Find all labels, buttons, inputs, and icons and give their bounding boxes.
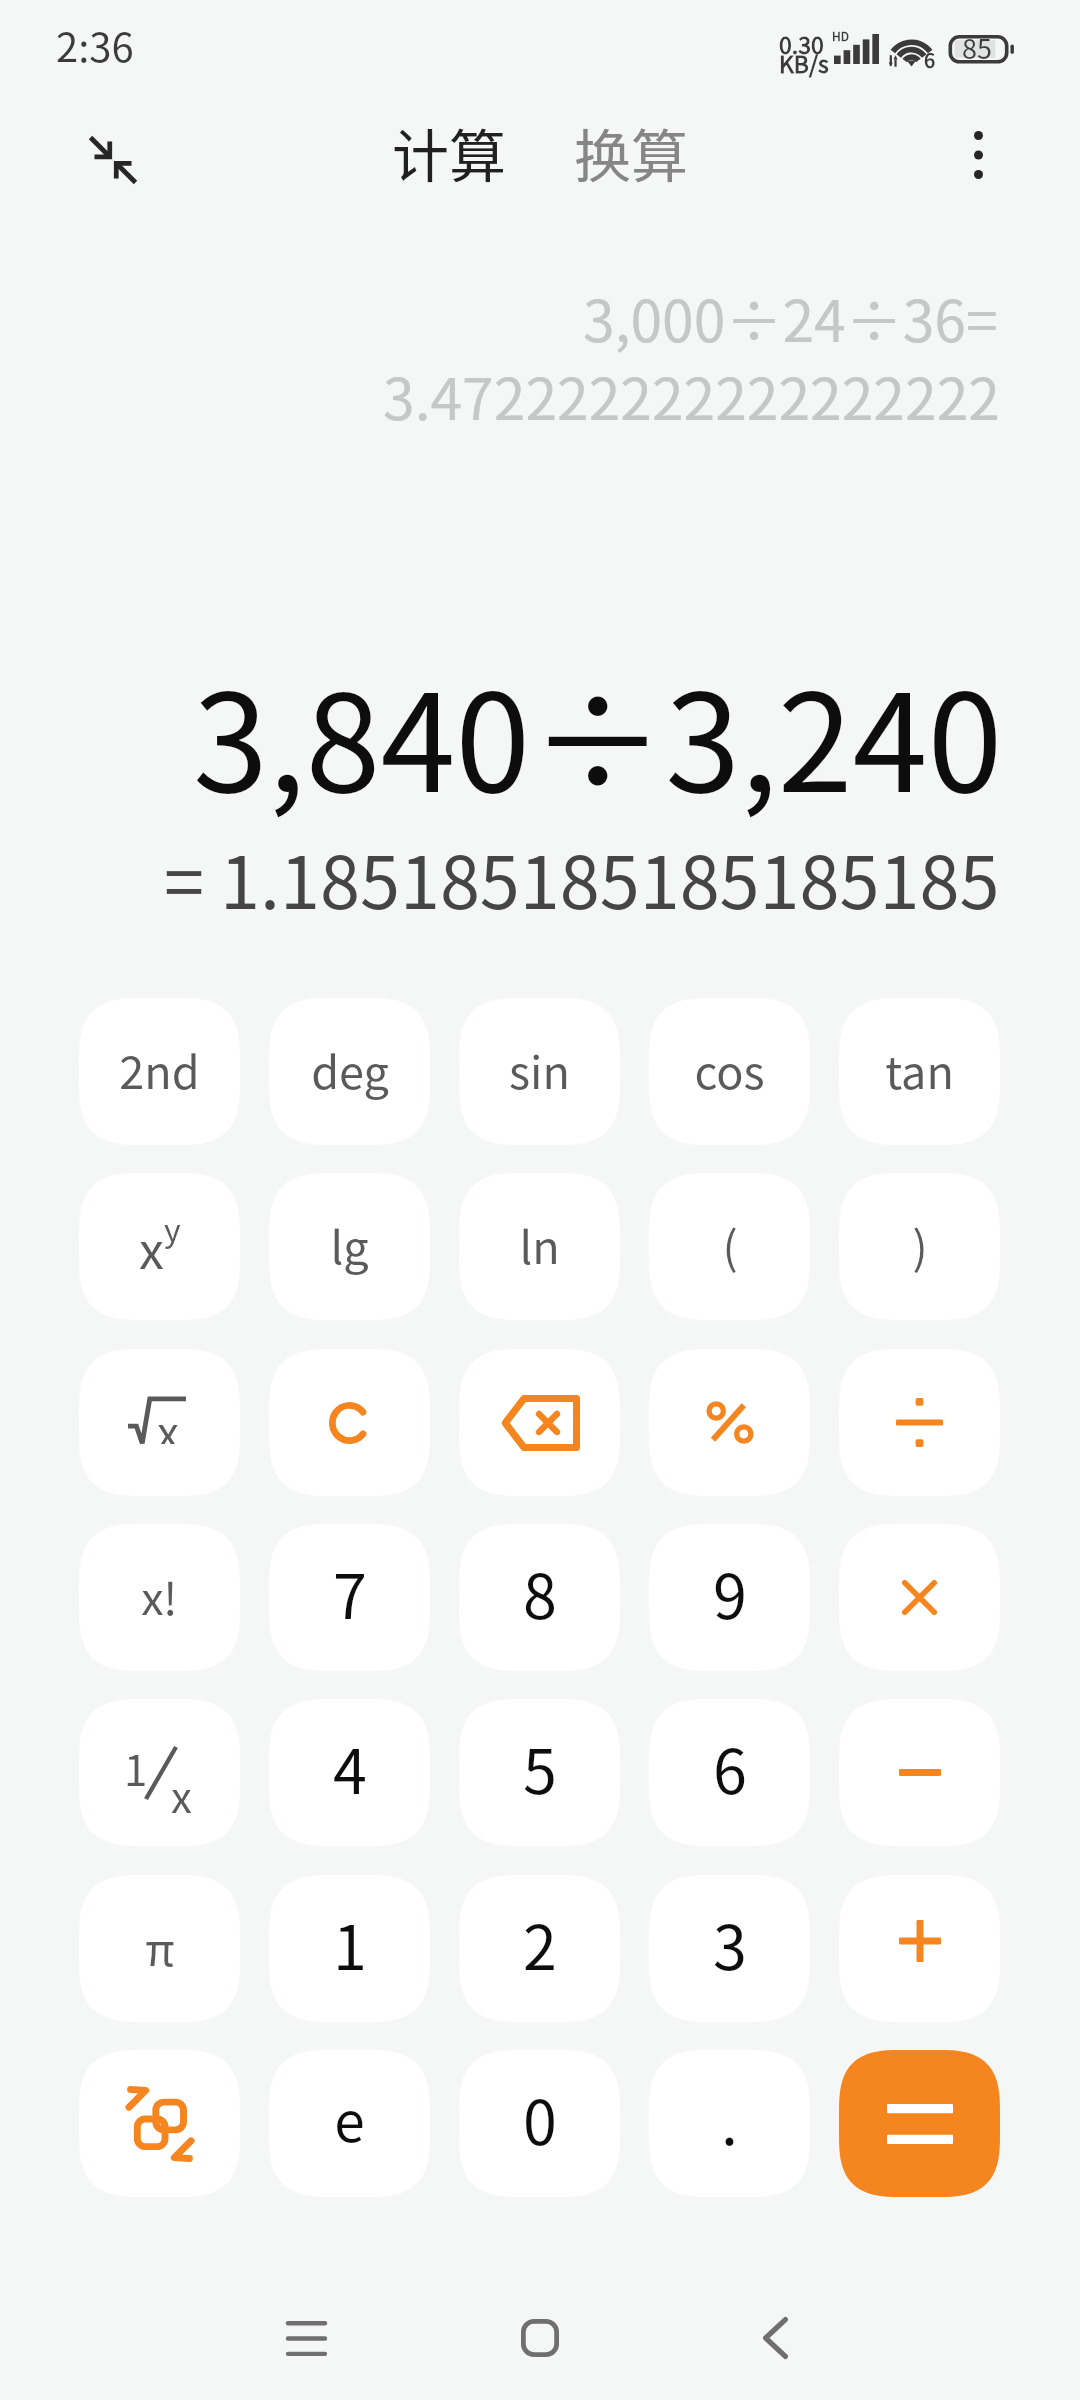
staticText: cos: [694, 1037, 765, 1102]
button[interactable]: Divide: [839, 1349, 1000, 1496]
staticText: 2:36: [56, 16, 134, 74]
button[interactable]: ln: [459, 1173, 620, 1320]
staticText: tan: [885, 1037, 954, 1102]
staticText: 9: [713, 1548, 747, 1636]
button[interactable]: Convert units: [79, 2050, 240, 2197]
button[interactable]: x: [79, 1173, 240, 1320]
button[interactable]: x: [79, 1349, 240, 1496]
staticText: (: [722, 1212, 738, 1277]
staticText: 85: [962, 28, 992, 67]
button[interactable]: 3: [649, 1875, 810, 2022]
staticText: π: [145, 1914, 175, 1979]
button[interactable]: π: [79, 1875, 240, 2022]
staticText: 3,840÷3,240: [193, 635, 1003, 830]
button[interactable]: 9: [649, 1524, 810, 1671]
staticText: x!: [141, 1563, 178, 1628]
button[interactable]: Delete: [459, 1349, 620, 1496]
staticText: 5: [523, 1723, 557, 1811]
button[interactable]: 8: [459, 1524, 620, 1671]
button[interactable]: Clear: [269, 1349, 430, 1496]
button[interactable]: deg: [269, 998, 430, 1145]
staticText: ): [912, 1212, 928, 1277]
button[interactable]: Home: [470, 2268, 610, 2400]
staticText: 换算: [574, 111, 688, 194]
button[interactable]: Collapse: [71, 118, 155, 202]
button[interactable]: tan: [839, 998, 1000, 1145]
button[interactable]: e: [269, 2050, 430, 2197]
staticText: = 1.185185185185185185: [164, 825, 1000, 929]
button[interactable]: 5: [459, 1699, 620, 1846]
staticText: e: [334, 2078, 365, 2158]
button[interactable]: 换算: [570, 101, 692, 204]
button[interactable]: Plus: [839, 1875, 1000, 2022]
button[interactable]: 1: [79, 1699, 240, 1846]
staticText: HD: [832, 27, 849, 44]
staticText: x: [157, 1398, 179, 1444]
button[interactable]: lg: [269, 1173, 430, 1320]
button[interactable]: Back: [705, 2268, 845, 2400]
staticText: sin: [509, 1037, 570, 1102]
button[interactable]: 1: [269, 1875, 430, 2022]
staticText: 3: [713, 1899, 747, 1987]
staticText: 6: [713, 1723, 747, 1811]
button[interactable]: x!: [79, 1524, 240, 1671]
button[interactable]: Recent apps: [236, 2268, 376, 2400]
button[interactable]: .: [649, 2050, 810, 2197]
button[interactable]: 2: [459, 1875, 620, 2022]
button[interactable]: (: [649, 1173, 810, 1320]
button[interactable]: 2nd: [79, 998, 240, 1145]
button[interactable]: sin: [459, 998, 620, 1145]
button[interactable]: 4: [269, 1699, 430, 1846]
button[interactable]: 计算: [388, 101, 510, 204]
staticText: 0.30: [779, 27, 824, 60]
staticText: 2: [523, 1899, 557, 1987]
button[interactable]: Multiply: [839, 1524, 1000, 1671]
button[interactable]: [839, 2050, 1000, 2197]
staticText: 4: [333, 1723, 367, 1811]
staticText: x: [171, 1764, 192, 1818]
staticText: KB/s: [779, 46, 829, 79]
staticText: 8: [523, 1548, 557, 1636]
button[interactable]: Percent: [649, 1349, 810, 1496]
staticText: 2nd: [119, 1037, 200, 1102]
staticText: 1: [333, 1899, 367, 1987]
button[interactable]: 6: [649, 1699, 810, 1846]
staticText: deg: [311, 1037, 389, 1102]
staticText: 6: [924, 45, 936, 74]
button[interactable]: 7: [269, 1524, 430, 1671]
staticText: 3,000÷24÷36=: [583, 276, 998, 359]
button[interactable]: More options: [936, 113, 1020, 197]
staticText: ln: [519, 1212, 560, 1277]
button[interactable]: cos: [649, 998, 810, 1145]
staticText: lg: [330, 1212, 369, 1277]
staticText: 7: [333, 1548, 367, 1636]
staticText: .: [721, 2074, 738, 2162]
staticText: 计算: [392, 111, 506, 194]
staticText: 3.472222222222222222: [383, 354, 1000, 437]
staticText: 1: [124, 1737, 148, 1791]
staticText: x: [139, 1211, 164, 1283]
staticText: 0: [523, 2074, 557, 2162]
button[interactable]: 0: [459, 2050, 620, 2197]
button[interactable]: ): [839, 1173, 1000, 1320]
button[interactable]: Minus: [839, 1699, 1000, 1846]
staticText: y: [164, 1205, 181, 1251]
